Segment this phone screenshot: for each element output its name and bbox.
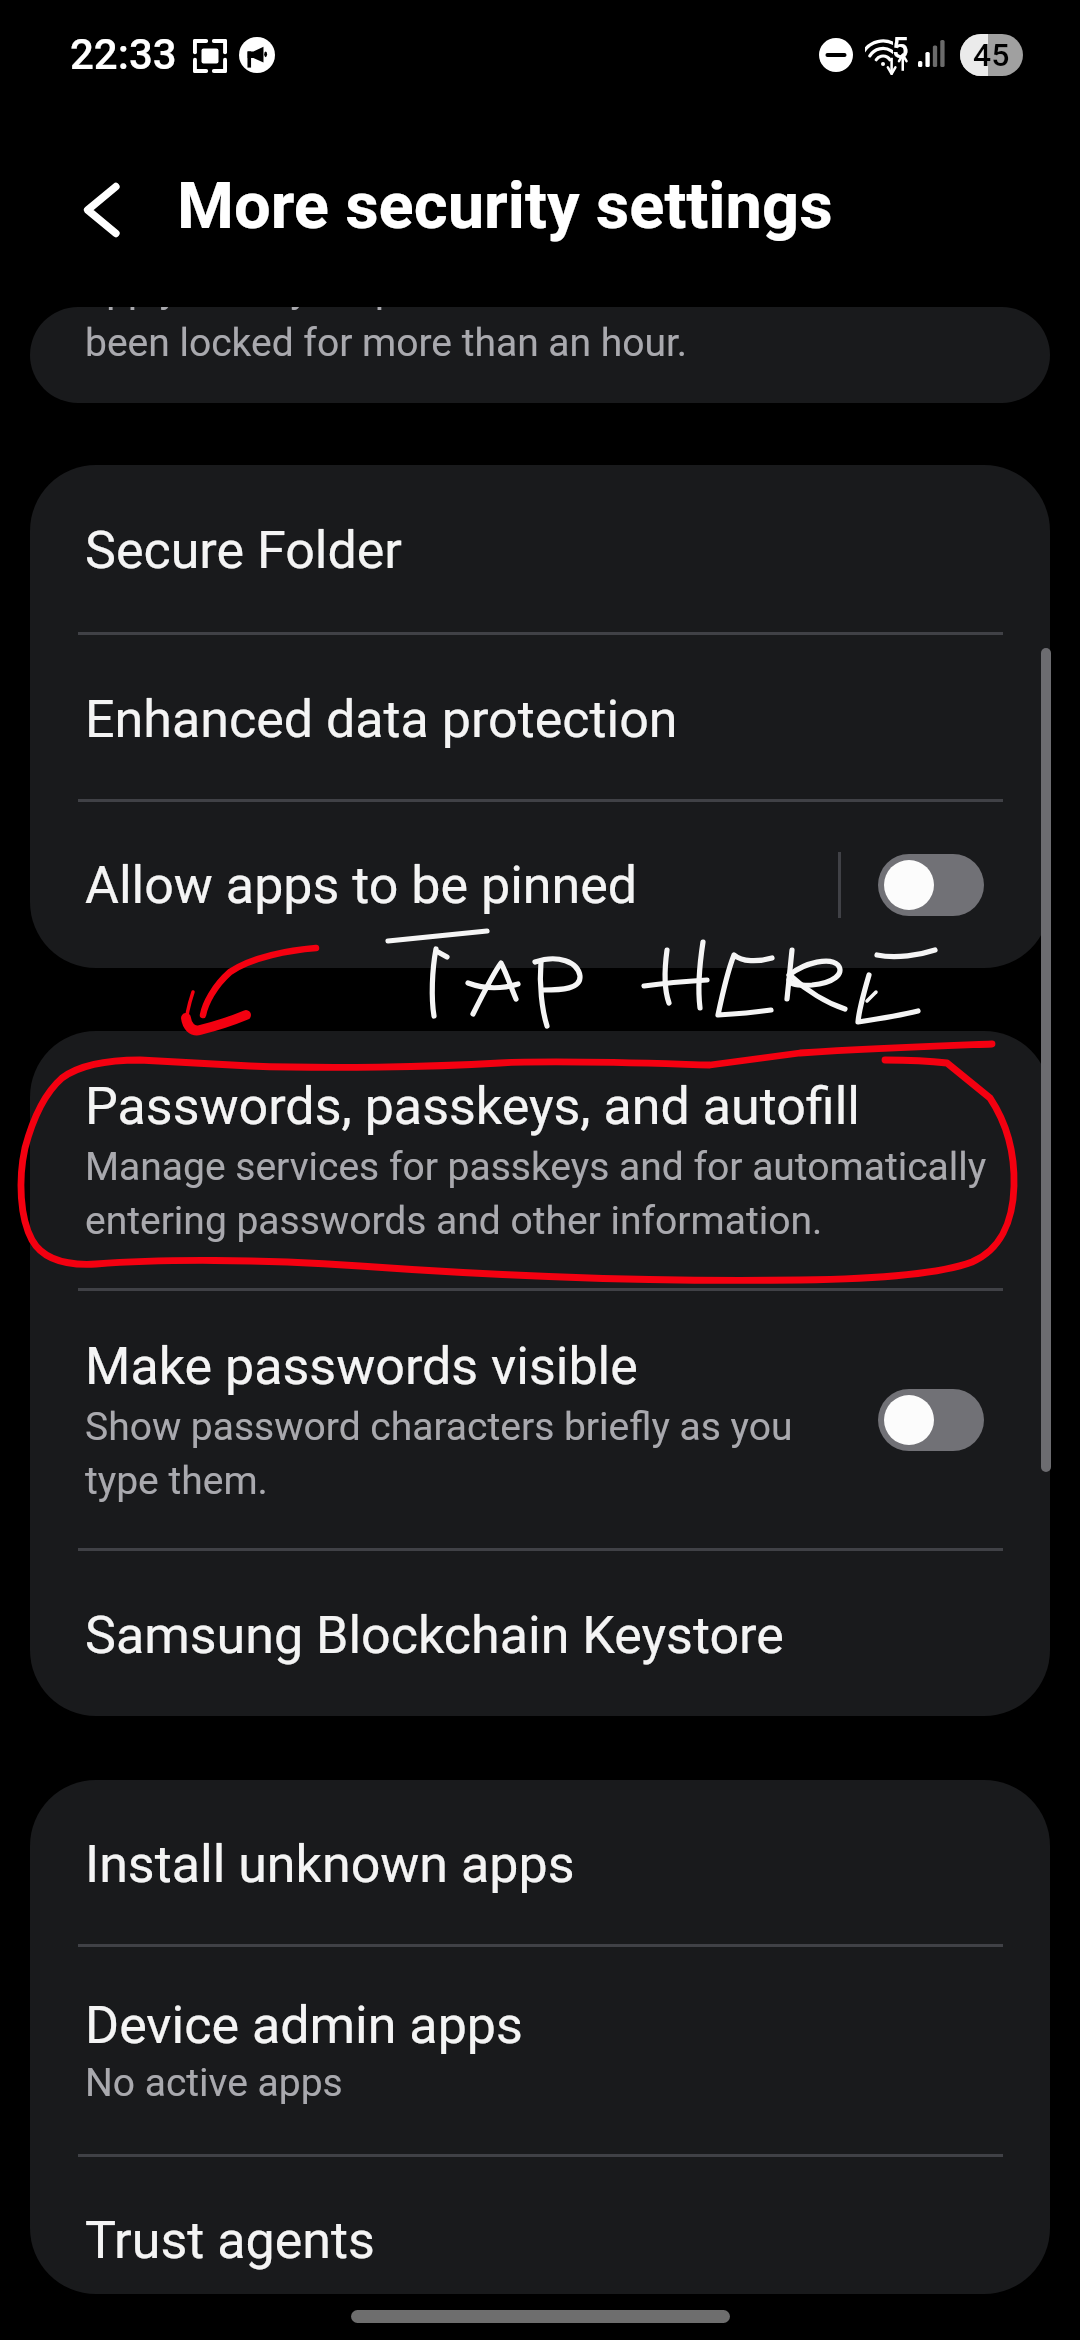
button[interactable]: Navigate up bbox=[71, 176, 139, 244]
button[interactable]: Enhanced data protection bbox=[30, 635, 1050, 799]
button[interactable]: Passwords, passkeys, and autofill bbox=[30, 1031, 1050, 1288]
staticText: Manage services for passkeys and for aut… bbox=[85, 1144, 1010, 1243]
staticText: Passwords, passkeys, and autofill bbox=[85, 1076, 860, 1137]
staticText: Samsung Blockchain Keystore bbox=[85, 1605, 784, 1666]
button[interactable]: Trust agents bbox=[30, 2157, 1050, 2294]
staticText: Allow apps to be pinned bbox=[85, 855, 638, 916]
button[interactable]: Make passwords visible bbox=[30, 1291, 1050, 1548]
staticText: 5 bbox=[892, 31, 909, 65]
staticText: Device admin apps bbox=[85, 1995, 523, 2056]
staticText: 45 bbox=[973, 36, 1010, 74]
button[interactable]: Secure Folder bbox=[30, 465, 1050, 632]
staticText: 22:33 bbox=[70, 30, 177, 79]
staticText: Secure Folder bbox=[85, 520, 402, 581]
button[interactable]: Install unknown apps bbox=[30, 1780, 1050, 1944]
staticText: No active apps bbox=[85, 2060, 343, 2106]
staticText: Make passwords visible bbox=[85, 1336, 638, 1397]
button[interactable]: Allow apps to be pinned bbox=[30, 802, 1050, 968]
staticText: More security settings bbox=[177, 168, 833, 244]
button[interactable]: apply when your phone has been locked fo… bbox=[30, 307, 1050, 403]
button[interactable]: Samsung Blockchain Keystore bbox=[30, 1551, 1050, 1716]
staticText: Trust agents bbox=[85, 2210, 375, 2271]
staticText: Install unknown apps bbox=[85, 1834, 575, 1895]
staticText: apply when your phone has been locked fo… bbox=[85, 307, 688, 362]
staticText: Show password characters briefly as you … bbox=[85, 1404, 820, 1503]
staticText: Enhanced data protection bbox=[85, 689, 678, 750]
button[interactable]: Device admin apps bbox=[30, 1947, 1050, 2154]
